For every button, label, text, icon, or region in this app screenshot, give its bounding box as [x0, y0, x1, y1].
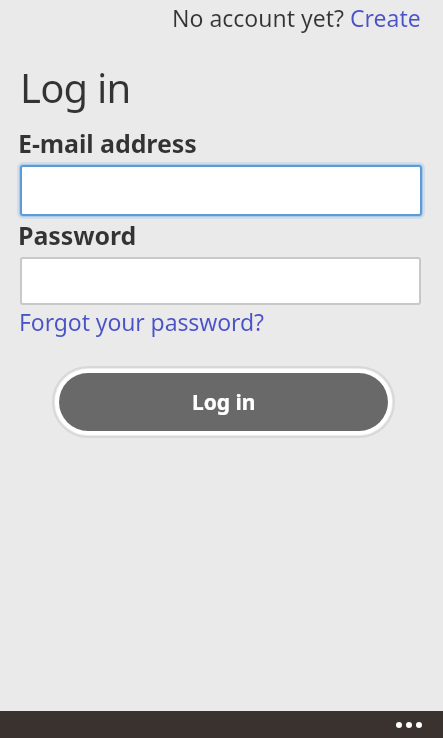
staticText: Password: [18, 218, 137, 252]
staticText: No account yet?: [172, 2, 350, 33]
button[interactable]: Forgot your password?: [19, 306, 264, 337]
button[interactable]: Log in: [59, 373, 388, 431]
staticText: E-mail address: [18, 126, 197, 160]
button[interactable]: [396, 722, 422, 728]
button[interactable]: Create: [350, 2, 421, 33]
staticText: Log in: [192, 388, 256, 417]
staticText: Log in: [20, 60, 131, 114]
